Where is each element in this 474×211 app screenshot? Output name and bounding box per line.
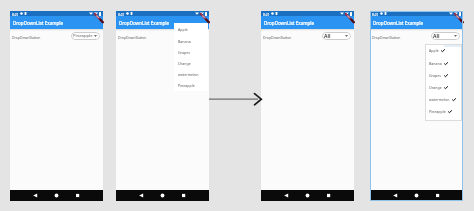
staticText: 8:21	[372, 12, 379, 16]
button[interactable]: Apple	[174, 23, 208, 35]
staticText: DropDownButton	[263, 35, 292, 40]
button[interactable]: DropDownList Example	[116, 16, 209, 29]
staticText: Orange	[429, 85, 442, 90]
button[interactable]: Orange	[174, 58, 208, 69]
button[interactable]: Orange	[429, 81, 460, 93]
staticText: All	[433, 33, 440, 40]
staticText: 8:21	[12, 12, 19, 16]
other: System navigation bar	[370, 190, 463, 201]
button[interactable]: Grapes	[174, 47, 208, 58]
other: System navigation bar	[10, 190, 103, 201]
button[interactable]: DropDownList Example	[10, 16, 103, 29]
staticText: DropDownButton	[12, 35, 41, 40]
button[interactable]: watermelon	[429, 93, 460, 105]
staticText: Pineapple	[178, 83, 195, 88]
staticText: DropDownList Example	[373, 20, 424, 26]
staticText: watermelon	[429, 97, 450, 102]
staticText: DropDownList Example	[264, 20, 315, 26]
staticText: Grapes	[178, 50, 191, 55]
staticText: Banana	[429, 61, 442, 66]
button[interactable]: Banana	[174, 35, 208, 47]
button[interactable]: Apple	[429, 44, 460, 57]
button[interactable]: watermelon	[174, 69, 208, 80]
button[interactable]: Pineapple	[174, 80, 208, 91]
staticText: Banana	[178, 39, 191, 44]
staticText: watermelon	[178, 72, 199, 77]
button[interactable]: DropDownList Example	[261, 16, 354, 29]
staticText: DropDownList Example	[13, 20, 64, 26]
button[interactable]: All	[322, 32, 351, 40]
other: System navigation bar	[261, 190, 354, 201]
staticText: Pineapple	[429, 109, 446, 114]
staticText: DropDownButton	[118, 35, 147, 40]
staticText: DropDownList Example	[119, 20, 170, 26]
staticText: 8:21	[263, 12, 270, 16]
staticText: Orange	[178, 61, 191, 66]
button[interactable]: Pineapple	[71, 32, 100, 40]
staticText: 8:21	[118, 12, 125, 16]
button[interactable]: Banana	[429, 57, 460, 69]
button[interactable]: Grapes	[429, 69, 460, 81]
button[interactable]: DropDownList Example	[370, 16, 463, 29]
staticText: Pineapple	[73, 33, 93, 39]
staticText: Apple	[178, 27, 188, 32]
staticText: Grapes	[429, 73, 442, 78]
staticText: DropDownButton	[372, 35, 401, 40]
staticText: All	[324, 33, 331, 40]
other: System navigation bar	[116, 190, 209, 201]
button[interactable]: Pineapple	[429, 105, 460, 117]
staticText: Apple	[429, 48, 439, 53]
button[interactable]: All	[431, 32, 460, 40]
